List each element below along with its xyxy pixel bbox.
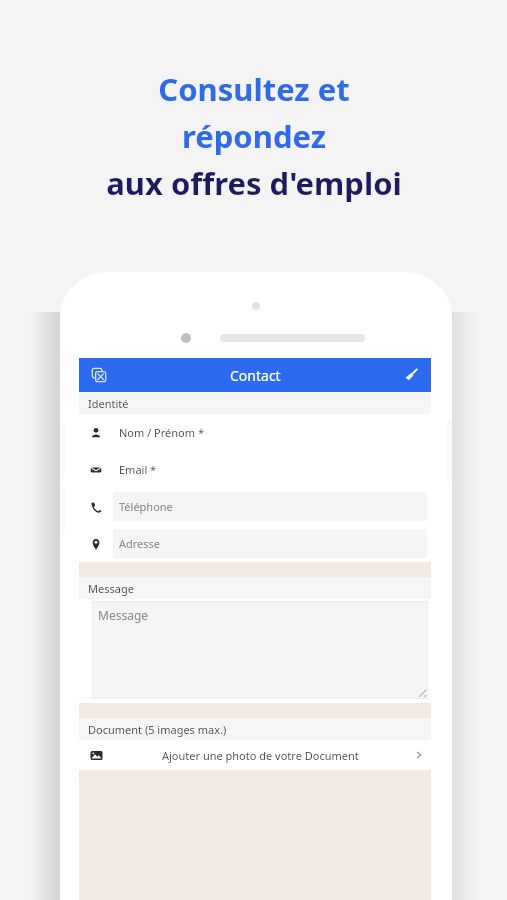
button[interactable]: Message: [92, 601, 428, 699]
staticText: aux offres d'emploi: [106, 162, 402, 204]
staticText: Consultez et: [158, 68, 350, 110]
button[interactable]: Effacer: [391, 358, 431, 392]
staticText: Identité: [88, 396, 129, 411]
button[interactable]: Nom / Prénom *: [79, 414, 431, 451]
button[interactable]: Adresse: [79, 525, 431, 562]
button[interactable]: Email *: [79, 451, 431, 488]
button[interactable]: Fermer: [79, 358, 119, 392]
staticText: Téléphone: [119, 499, 173, 514]
staticText: Message: [88, 581, 134, 596]
staticText: répondez: [182, 115, 326, 157]
staticText: Email *: [119, 462, 157, 477]
staticText: Nom / Prénom *: [119, 425, 204, 440]
staticText: Document (5 images max.): [88, 722, 227, 737]
staticText: Contact: [230, 366, 281, 385]
button[interactable]: Téléphone: [79, 488, 431, 525]
staticText: Adresse: [119, 536, 161, 551]
staticText: Ajouter une photo de votre Document: [162, 748, 359, 763]
button[interactable]: Ajouter une photo de votre Document: [79, 740, 431, 770]
staticText: Message: [98, 607, 149, 623]
